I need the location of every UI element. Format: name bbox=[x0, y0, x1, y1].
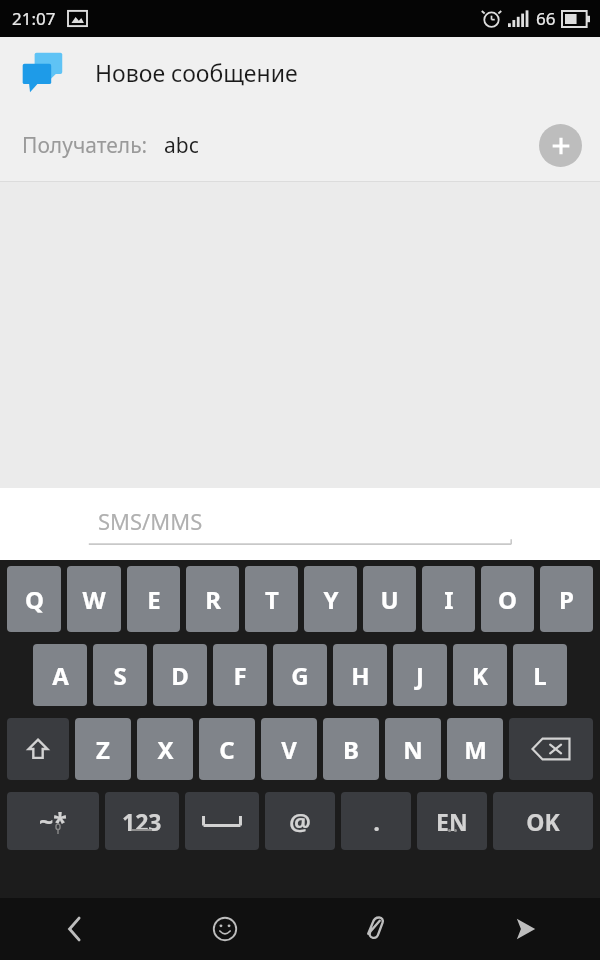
button[interactable]: Z bbox=[75, 718, 131, 780]
button[interactable]: Emoji bbox=[150, 898, 300, 960]
staticText: abc bbox=[164, 131, 199, 160]
button[interactable]: @ bbox=[265, 792, 335, 850]
button[interactable]: A bbox=[33, 644, 87, 706]
staticText: 123 bbox=[122, 806, 162, 837]
button[interactable]: T bbox=[245, 566, 298, 632]
staticText: D bbox=[171, 659, 189, 692]
button[interactable]: Q bbox=[7, 566, 61, 632]
button[interactable]: Backspace bbox=[509, 718, 593, 780]
button[interactable]: M bbox=[447, 718, 503, 780]
button[interactable]: OK bbox=[493, 792, 593, 850]
button[interactable]: SMS/MMS bbox=[0, 488, 600, 560]
staticText: X bbox=[157, 733, 174, 766]
staticText: H bbox=[351, 659, 370, 692]
staticText: @ bbox=[289, 805, 311, 838]
staticText: SMS/MMS bbox=[98, 506, 203, 536]
button[interactable]: Space bbox=[185, 792, 259, 850]
button[interactable]: W bbox=[67, 566, 121, 632]
button[interactable]: N bbox=[385, 718, 441, 780]
button[interactable]: U bbox=[363, 566, 416, 632]
button[interactable]: G bbox=[273, 644, 327, 706]
staticText: ~* bbox=[39, 804, 67, 838]
staticText: F bbox=[233, 659, 247, 692]
staticText: Z bbox=[96, 733, 110, 766]
button[interactable]: Send bbox=[450, 898, 600, 960]
other: Messaging bbox=[19, 50, 65, 96]
button[interactable]: Shift bbox=[7, 718, 69, 780]
button[interactable]: . bbox=[341, 792, 411, 850]
staticText: Получатель: bbox=[22, 131, 148, 160]
staticText: 66 bbox=[536, 7, 556, 30]
staticText: B bbox=[343, 733, 359, 766]
button[interactable]: Symbols bbox=[7, 792, 99, 850]
staticText: S bbox=[113, 659, 127, 692]
button[interactable]: S bbox=[93, 644, 147, 706]
button[interactable]: Back bbox=[0, 898, 150, 960]
button[interactable]: X bbox=[137, 718, 193, 780]
staticText: K bbox=[472, 659, 488, 692]
button[interactable]: F bbox=[213, 644, 267, 706]
staticText: T bbox=[265, 583, 279, 616]
button[interactable]: O bbox=[481, 566, 534, 632]
staticText: . bbox=[373, 805, 380, 838]
button[interactable]: H bbox=[333, 644, 387, 706]
staticText: W bbox=[82, 583, 106, 616]
staticText: L bbox=[533, 659, 547, 692]
staticText: OK bbox=[526, 806, 560, 837]
staticText: O bbox=[498, 583, 517, 616]
staticText: M bbox=[464, 733, 487, 766]
button[interactable]: Add recipient bbox=[539, 124, 582, 167]
staticText: A bbox=[52, 659, 69, 692]
staticText: G bbox=[291, 659, 309, 692]
staticText: Y bbox=[323, 583, 339, 616]
button[interactable]: C bbox=[199, 718, 255, 780]
button[interactable]: R bbox=[186, 566, 239, 632]
staticText: N bbox=[403, 733, 423, 766]
button[interactable]: E bbox=[127, 566, 180, 632]
staticText: J bbox=[416, 659, 424, 692]
staticText: R bbox=[205, 583, 221, 616]
staticText: Q bbox=[25, 583, 44, 616]
button[interactable]: Language bbox=[417, 792, 487, 850]
button[interactable]: L bbox=[513, 644, 567, 706]
staticText: EN bbox=[436, 806, 468, 837]
button[interactable]: I bbox=[422, 566, 475, 632]
staticText: I bbox=[444, 583, 454, 616]
staticText: Новое сообщение bbox=[95, 57, 298, 88]
button[interactable]: J bbox=[393, 644, 447, 706]
button[interactable]: B bbox=[323, 718, 379, 780]
staticText: E bbox=[147, 583, 161, 616]
button[interactable]: Y bbox=[304, 566, 357, 632]
button[interactable]: K bbox=[453, 644, 507, 706]
staticText: P bbox=[559, 583, 574, 616]
staticText: V bbox=[281, 733, 297, 766]
staticText: U bbox=[380, 583, 399, 616]
button[interactable]: Numbers bbox=[105, 792, 179, 850]
button[interactable]: Attach bbox=[300, 898, 450, 960]
button[interactable]: P bbox=[540, 566, 593, 632]
button[interactable]: Messaging bbox=[0, 37, 600, 108]
staticText: C bbox=[219, 733, 235, 766]
staticText: 21:07 bbox=[12, 7, 56, 30]
button[interactable]: V bbox=[261, 718, 317, 780]
button[interactable]: D bbox=[153, 644, 207, 706]
